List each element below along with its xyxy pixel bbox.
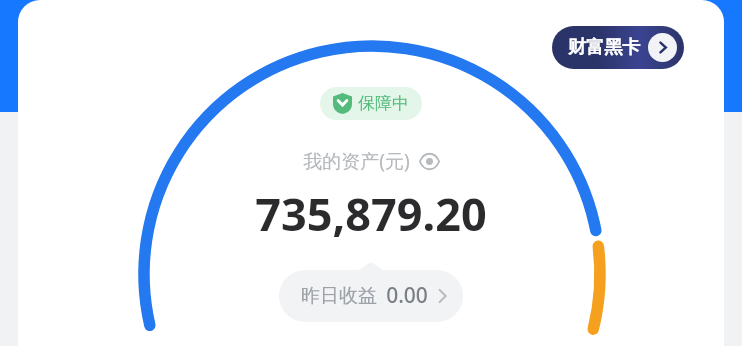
staticText: 财富黑卡 [568, 36, 640, 59]
staticText: 保障中 [358, 93, 409, 114]
staticText: 735,879.20 [255, 183, 487, 244]
staticText: 昨日收益 [301, 284, 377, 308]
button[interactable]: 我的资产(元) [299, 146, 444, 176]
button[interactable]: Yesterday earnings [279, 262, 463, 322]
staticText: 我的资产(元) [303, 148, 410, 174]
other: Hide balance [419, 151, 440, 172]
button[interactable]: 财富黑卡 [552, 26, 684, 69]
staticText: 0.00 [386, 281, 428, 310]
button[interactable]: 保障中 [320, 87, 422, 120]
